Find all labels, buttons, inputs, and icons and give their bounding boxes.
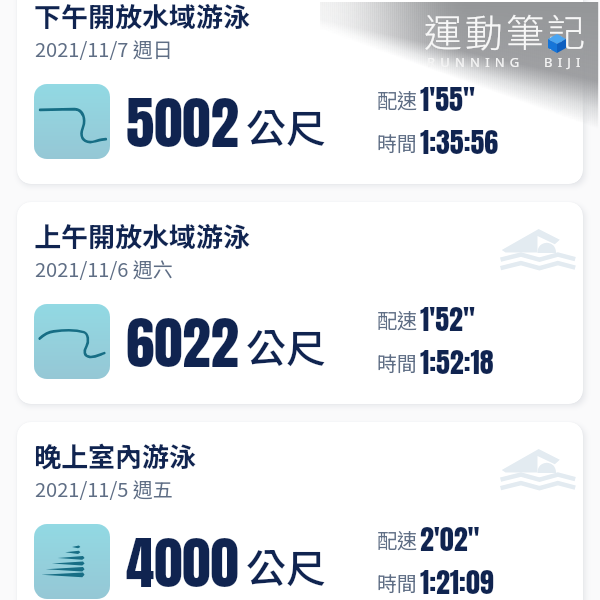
staticText: 配速 xyxy=(377,525,417,554)
button[interactable]: 晚上室內游泳 xyxy=(17,422,583,600)
staticText: 1:52:18 xyxy=(420,341,494,383)
staticText: 配速 xyxy=(377,305,417,334)
staticText: 1'52" xyxy=(420,298,475,340)
staticText: 2'02" xyxy=(420,518,480,560)
staticText: 運動筆記 xyxy=(424,3,589,58)
staticText: RUNNING xyxy=(427,53,525,71)
staticText: 時間 xyxy=(377,348,417,377)
staticText: 時間 xyxy=(377,128,417,157)
staticText: 5002 xyxy=(126,80,239,166)
staticText: 1:35:56 xyxy=(420,121,499,163)
staticText: 下午開放水域游泳 xyxy=(34,0,250,35)
staticText: 2021/11/5 週五 xyxy=(35,474,173,503)
staticText: 晚上室內游泳 xyxy=(34,436,196,475)
staticText: 公尺 xyxy=(246,537,326,595)
staticText: 1'55" xyxy=(420,78,475,120)
staticText: 公尺 xyxy=(246,97,326,155)
staticText: 配速 xyxy=(377,85,417,114)
staticText: 2021/11/6 週六 xyxy=(35,254,173,283)
staticText: 2021/11/7 週日 xyxy=(35,34,173,63)
staticText: 1:21:09 xyxy=(420,561,494,600)
button[interactable]: 上午開放水域游泳 xyxy=(17,202,583,404)
button[interactable]: 下午開放水域游泳 xyxy=(17,0,583,184)
staticText: 公尺 xyxy=(246,317,326,375)
staticText: 4000 xyxy=(126,520,239,600)
staticText: 時間 xyxy=(377,568,417,597)
staticText: 上午開放水域游泳 xyxy=(34,216,250,255)
staticText: BIJI xyxy=(544,53,586,71)
staticText: 6022 xyxy=(126,300,239,386)
